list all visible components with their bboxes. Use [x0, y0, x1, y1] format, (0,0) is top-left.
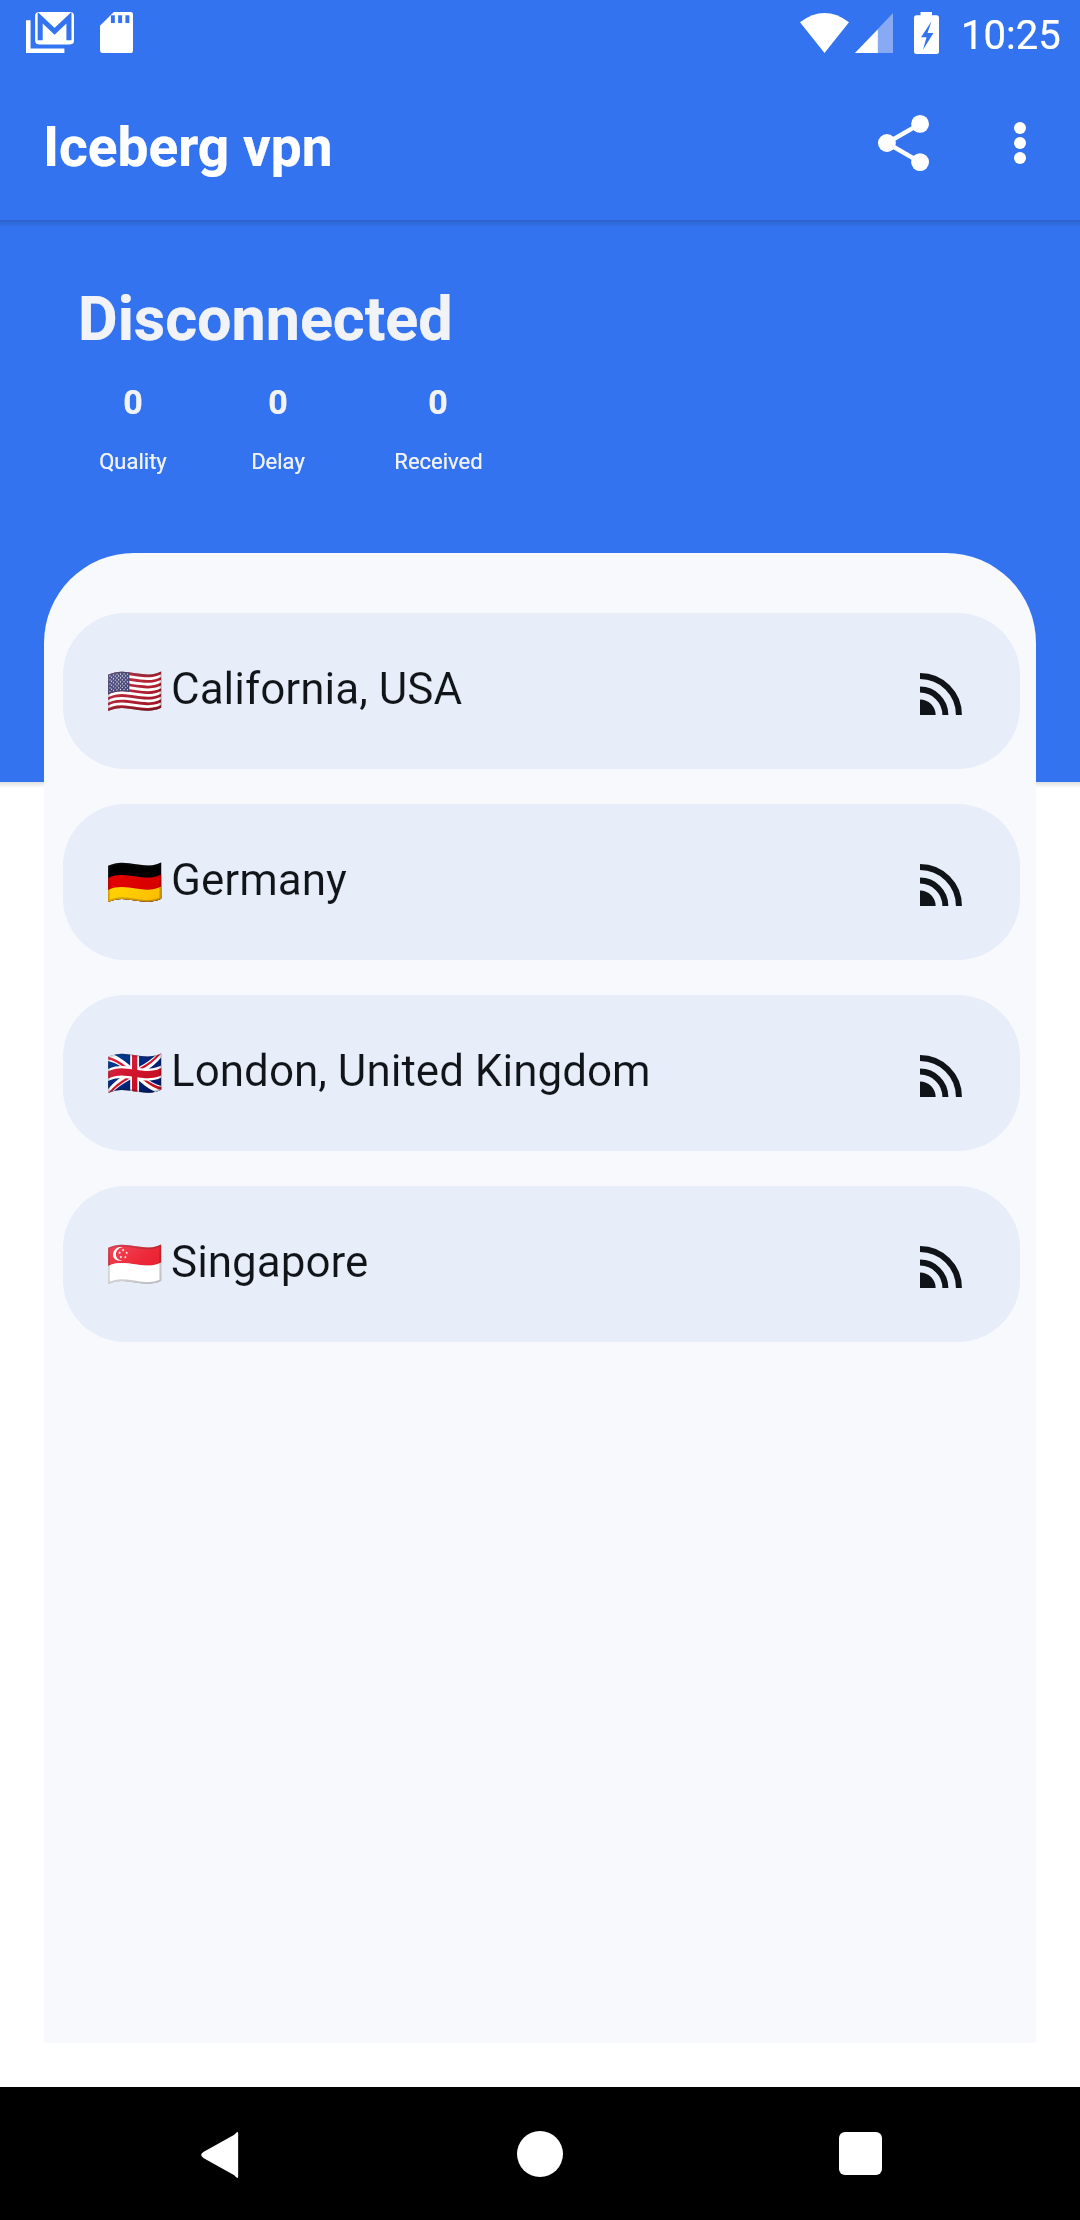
staticText: California, USA	[171, 663, 463, 715]
staticText: 10:25	[961, 12, 1061, 59]
staticText: Singapore	[171, 1236, 369, 1288]
button[interactable]: Share	[843, 83, 963, 203]
button[interactable]: 🇺🇸	[63, 613, 1020, 769]
button[interactable]: 🇬🇧	[63, 995, 1020, 1151]
staticText: 🇸🇬	[106, 1237, 164, 1291]
staticText: Delay	[251, 449, 305, 475]
staticText: Received	[394, 449, 483, 475]
button[interactable]: Home	[472, 2087, 607, 2220]
button[interactable]: 🇩🇪	[63, 804, 1020, 960]
staticText: Germany	[171, 854, 347, 906]
button[interactable]: 🇸🇬	[63, 1186, 1020, 1342]
staticText: 🇬🇧	[106, 1046, 164, 1100]
staticText: 0	[123, 382, 143, 422]
button[interactable]: More options	[960, 83, 1080, 203]
staticText: Iceberg vpn	[43, 115, 333, 179]
staticText: 0	[268, 382, 288, 422]
staticText: 🇺🇸	[106, 664, 164, 718]
staticText: Quality	[99, 449, 167, 475]
staticText: 🇩🇪	[106, 855, 164, 909]
button[interactable]: Back	[153, 2087, 288, 2220]
staticText: 0	[428, 382, 448, 422]
staticText: Disconnected	[78, 283, 453, 354]
staticText: London, United Kingdom	[171, 1045, 651, 1097]
button[interactable]: Recent apps	[793, 2087, 928, 2220]
